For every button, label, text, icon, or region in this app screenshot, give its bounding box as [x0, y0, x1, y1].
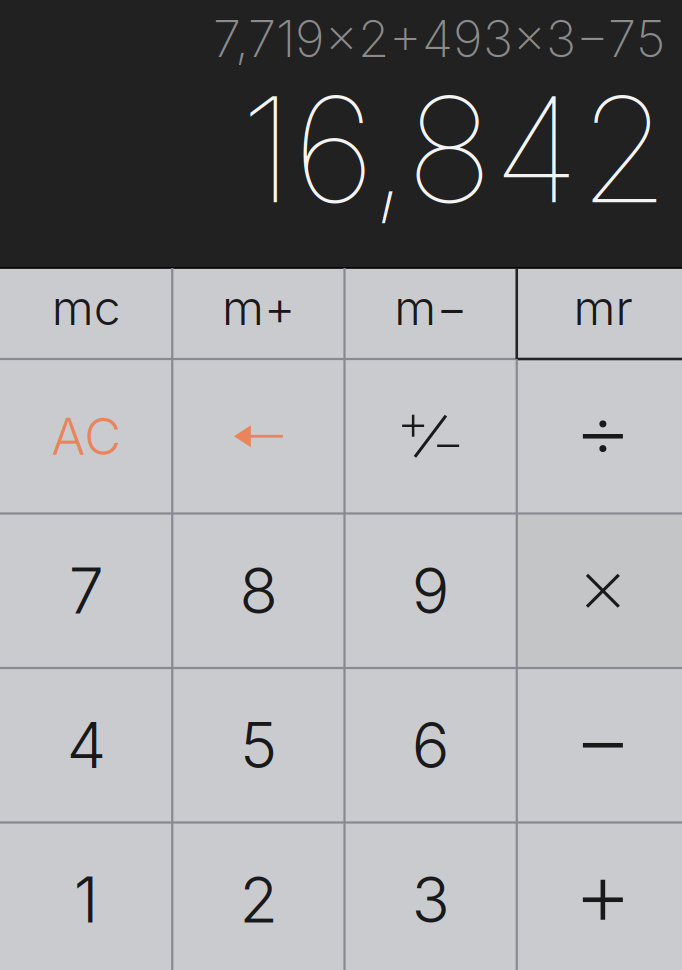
staticText: 2 [239, 862, 277, 938]
button[interactable]: 8 [172, 513, 344, 668]
button[interactable]: 5 [172, 668, 344, 822]
button[interactable]: Divide [517, 359, 682, 513]
button[interactable]: mc [0, 268, 172, 359]
button[interactable]: Plus [517, 822, 682, 970]
staticText: 7 [69, 553, 104, 629]
staticText: 6 [412, 707, 450, 783]
button[interactable]: Multiply [517, 513, 682, 668]
button[interactable]: Minus [517, 668, 682, 822]
staticText: 4 [67, 707, 106, 783]
button[interactable]: AC [0, 359, 172, 513]
staticText: AC [51, 406, 121, 467]
staticText: m+ [222, 278, 295, 337]
button[interactable]: 9 [344, 513, 517, 668]
staticText: 9 [412, 553, 450, 629]
staticText: 16,842 [240, 62, 669, 237]
button[interactable]: 7 [0, 513, 172, 668]
staticText: mr [573, 278, 632, 337]
button[interactable]: m+ [172, 268, 344, 359]
staticText: 5 [240, 707, 277, 783]
button[interactable]: 2 [172, 822, 344, 970]
staticText: 3 [412, 862, 450, 938]
button[interactable]: m− [344, 268, 517, 359]
button[interactable]: Backspace [172, 359, 344, 513]
staticText: 7,719×2+493×3−75 [213, 8, 665, 69]
staticText: mc [52, 278, 121, 337]
button[interactable]: 6 [344, 668, 517, 822]
button[interactable]: 3 [344, 822, 517, 970]
button[interactable]: Plus minus [344, 359, 517, 513]
staticText: m− [394, 278, 467, 337]
button[interactable]: mr [517, 268, 682, 359]
button[interactable]: 4 [0, 668, 172, 822]
button[interactable]: 1 [0, 822, 172, 970]
staticText: 8 [239, 553, 277, 629]
staticText: 1 [74, 862, 99, 938]
